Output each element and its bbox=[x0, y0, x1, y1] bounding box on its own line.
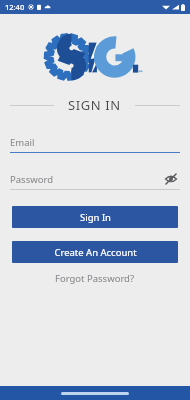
button[interactable]: Sign In bbox=[12, 206, 178, 228]
staticText: Create An Account bbox=[54, 246, 137, 259]
staticText: 12:40 bbox=[5, 2, 25, 12]
button[interactable]: Email bbox=[10, 132, 180, 153]
staticText: Forgot Password? bbox=[55, 272, 135, 285]
button[interactable]: Password bbox=[10, 169, 180, 190]
button[interactable]: Home gesture bbox=[61, 392, 129, 395]
staticText: Sign In bbox=[80, 211, 111, 224]
button[interactable]: Forgot Password? bbox=[0, 272, 190, 285]
button[interactable]: Show password bbox=[162, 170, 180, 188]
button[interactable]: Create An Account bbox=[12, 241, 178, 263]
staticText: SIGN IN bbox=[68, 96, 121, 114]
staticText: Password bbox=[10, 173, 162, 186]
staticText: Email bbox=[10, 136, 180, 149]
